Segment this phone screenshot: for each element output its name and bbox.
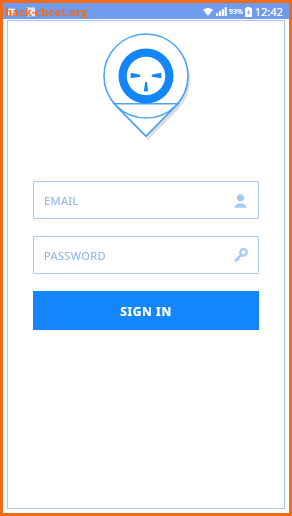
staticText: SIGN IN	[120, 303, 172, 319]
button[interactable]: EMAIL	[33, 181, 259, 219]
button[interactable]: PASSWORD	[33, 236, 259, 274]
staticText: 12:42	[255, 4, 284, 19]
staticText: PASSWORD	[44, 248, 233, 263]
button[interactable]: SIGN IN	[33, 291, 259, 330]
other: Email account	[233, 193, 248, 208]
staticText: EMAIL	[44, 193, 233, 208]
staticText: hack-cheat.org	[5, 4, 88, 19]
staticText: 93%	[229, 7, 243, 17]
other: Password	[233, 248, 248, 263]
